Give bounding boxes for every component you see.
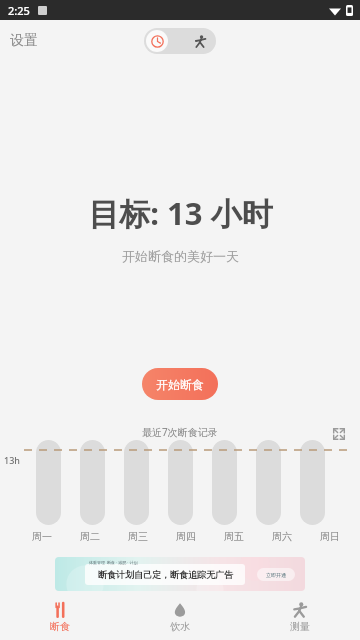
staticText: 周日 <box>320 530 340 543</box>
button[interactable]: Expand chart <box>328 423 350 445</box>
staticText: 2:25 <box>8 3 30 18</box>
staticText: 周六 <box>272 530 292 543</box>
staticText: 13h <box>4 454 20 466</box>
staticText: 开始断食 <box>156 377 204 392</box>
button[interactable]: 测量 <box>240 598 360 637</box>
staticText: 立即开通 <box>266 572 286 578</box>
button[interactable]: 设置 <box>0 28 46 54</box>
staticText: 最近7次断食记录 <box>142 425 218 439</box>
button[interactable]: Mode toggle <box>144 28 216 54</box>
staticText: 体重管理 断食 · 减肥 · 计划 <box>89 560 138 565</box>
button[interactable]: 饮水 <box>120 598 240 637</box>
staticText: 饮水 <box>170 620 190 633</box>
staticText: 周五 <box>224 530 244 543</box>
staticText: 断食计划自己定，断食追踪无广告 <box>98 569 233 580</box>
button[interactable]: 断食 <box>0 598 120 637</box>
staticText: 断食 <box>50 620 70 633</box>
staticText: 测量 <box>290 620 310 633</box>
staticText: 周四 <box>176 530 196 543</box>
staticText: 开始断食的美好一天 <box>122 248 239 264</box>
button[interactable]: 立即开通 <box>257 568 295 581</box>
staticText: 周一 <box>32 530 52 543</box>
staticText: 周二 <box>80 530 100 543</box>
staticText: 目标: 13 小时 <box>88 192 273 234</box>
staticText: 周三 <box>128 530 148 543</box>
button[interactable]: 断食计划自己定，断食追踪无广告 <box>55 557 305 591</box>
staticText: 设置 <box>10 32 38 50</box>
button[interactable]: 开始断食 <box>142 368 218 400</box>
